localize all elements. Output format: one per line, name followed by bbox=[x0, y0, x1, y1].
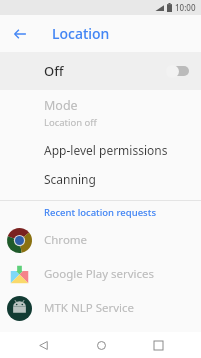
button[interactable]: Recent apps bbox=[143, 332, 173, 358]
button[interactable]: Google Play services bbox=[0, 257, 201, 291]
staticText: MTK NLP Service bbox=[44, 300, 135, 316]
button[interactable]: Off bbox=[0, 52, 201, 90]
staticText: 10:00 bbox=[175, 2, 196, 13]
staticText: Scanning bbox=[44, 171, 96, 187]
staticText: Off bbox=[44, 62, 64, 80]
staticText: App-level permissions bbox=[44, 142, 168, 158]
staticText: Mode bbox=[44, 97, 78, 114]
button[interactable]: Chrome bbox=[0, 223, 201, 257]
button[interactable]: Back bbox=[28, 332, 58, 358]
staticText: Google Play services bbox=[44, 266, 155, 282]
button[interactable]: Mode bbox=[0, 90, 201, 135]
staticText: Location off bbox=[44, 116, 97, 129]
staticText: Chrome bbox=[44, 232, 88, 248]
button[interactable]: Back bbox=[8, 22, 32, 46]
button[interactable]: Scanning bbox=[0, 164, 201, 193]
button[interactable]: MTK NLP Service bbox=[0, 291, 201, 325]
staticText: Location bbox=[52, 24, 110, 43]
button[interactable]: App-level permissions bbox=[0, 135, 201, 164]
staticText: Recent location requests bbox=[44, 206, 156, 219]
button[interactable]: Home bbox=[86, 332, 116, 358]
